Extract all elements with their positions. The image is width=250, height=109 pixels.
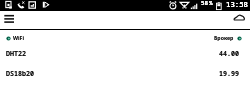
staticText: DS18b20 bbox=[6, 69, 35, 78]
staticText: 44.00 bbox=[219, 49, 240, 58]
staticText: Брокер bbox=[214, 34, 234, 41]
staticText: 13:58 bbox=[226, 0, 248, 9]
staticText: Брокер bbox=[214, 34, 234, 41]
staticText: DHT22 bbox=[6, 49, 27, 58]
staticText: % bbox=[209, 0, 213, 7]
staticText: 19.99 bbox=[219, 69, 240, 78]
button[interactable]: DHT22 bbox=[0, 43, 250, 63]
button[interactable]: Cloud connection bbox=[228, 11, 250, 29]
staticText: 58 bbox=[201, 0, 208, 7]
button[interactable]: DS18b20 bbox=[0, 63, 250, 83]
staticText: WiFi bbox=[13, 34, 24, 41]
staticText: WiFi bbox=[13, 34, 24, 41]
staticText: DHT22 bbox=[6, 49, 27, 58]
button[interactable]: WiFi bbox=[0, 31, 250, 45]
staticText: DS18b20 bbox=[6, 69, 35, 78]
staticText: 19.99 bbox=[219, 69, 240, 78]
staticText: 58 bbox=[201, 0, 208, 7]
button[interactable]: Open navigation menu bbox=[0, 11, 19, 29]
staticText: 44.00 bbox=[219, 49, 240, 58]
staticText: % bbox=[209, 0, 213, 7]
staticText: 13:58 bbox=[226, 0, 248, 9]
